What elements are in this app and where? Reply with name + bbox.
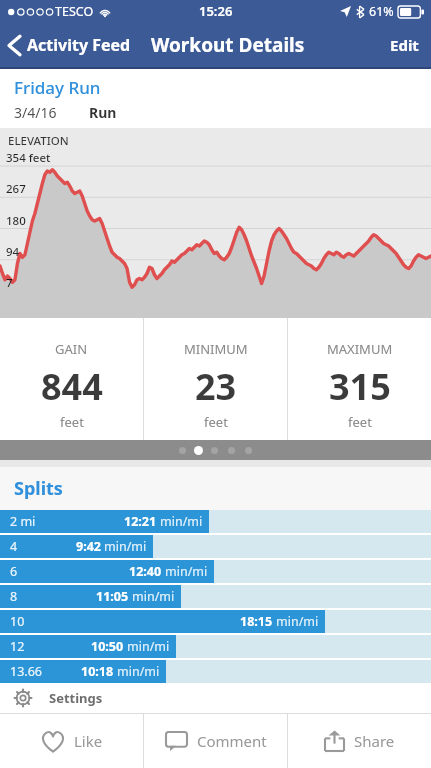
button[interactable]: Edit bbox=[378, 27, 431, 63]
button[interactable]: Friday Run bbox=[0, 69, 431, 128]
staticText: feet bbox=[60, 413, 84, 431]
staticText: ELEVATION bbox=[8, 133, 69, 149]
button[interactable]: 8 bbox=[0, 585, 431, 608]
staticText: min/mi bbox=[165, 563, 208, 580]
staticText: 12:40 bbox=[129, 563, 162, 580]
staticText: min/mi bbox=[276, 613, 319, 630]
staticText: Run bbox=[89, 103, 117, 122]
staticText: 8 bbox=[10, 588, 18, 605]
staticText: min/mi bbox=[160, 513, 203, 530]
staticText: 12 bbox=[10, 638, 25, 655]
staticText: 94 bbox=[6, 244, 20, 260]
staticText: Settings bbox=[49, 689, 103, 707]
staticText: 15:26 bbox=[199, 2, 233, 20]
button[interactable]: Back bbox=[0, 28, 137, 62]
button[interactable]: MAXIMUM bbox=[288, 318, 431, 440]
staticText: 7 bbox=[6, 275, 13, 291]
button[interactable]: 13.66 bbox=[0, 660, 431, 683]
button[interactable]: Share bbox=[288, 714, 431, 768]
staticText: 61% bbox=[369, 3, 394, 20]
staticText: 23 bbox=[195, 362, 237, 411]
staticText: 9:42 bbox=[76, 538, 101, 555]
button[interactable]: Like bbox=[0, 714, 143, 768]
staticText: MINIMUM bbox=[184, 340, 248, 358]
staticText: MAXIMUM bbox=[327, 340, 393, 358]
staticText: 11:05 bbox=[96, 588, 129, 605]
staticText: 10:50 bbox=[91, 638, 124, 655]
staticText: min/mi bbox=[104, 538, 147, 555]
staticText: GAIN bbox=[55, 340, 88, 358]
button[interactable]: Settings bbox=[0, 683, 431, 713]
staticText: 4 bbox=[10, 538, 18, 555]
button[interactable]: 2 mi bbox=[0, 510, 431, 533]
staticText: 10 bbox=[10, 613, 25, 630]
staticText: min/mi bbox=[117, 663, 160, 680]
button[interactable]: Comment bbox=[144, 714, 287, 768]
staticText: 315 bbox=[329, 362, 391, 411]
staticText: Like bbox=[74, 731, 103, 751]
staticText: Splits bbox=[14, 476, 63, 501]
staticText: 844 bbox=[41, 362, 103, 411]
staticText: 18:15 bbox=[240, 613, 273, 630]
staticText: min/mi bbox=[132, 588, 175, 605]
staticText: 6 bbox=[10, 563, 18, 580]
button[interactable]: GAIN bbox=[0, 318, 143, 440]
button[interactable]: 10 bbox=[0, 610, 431, 633]
button[interactable]: 4 bbox=[0, 535, 431, 558]
staticText: 180 bbox=[6, 213, 26, 229]
staticText: feet bbox=[204, 413, 228, 431]
button[interactable]: MINIMUM bbox=[144, 318, 287, 440]
staticText: 267 bbox=[6, 181, 26, 197]
staticText: 3/4/16 bbox=[14, 103, 57, 122]
staticText: Workout Details bbox=[151, 32, 305, 58]
staticText: Activity Feed bbox=[27, 34, 131, 56]
staticText: Friday Run bbox=[14, 76, 101, 99]
button[interactable]: 6 bbox=[0, 560, 431, 583]
staticText: Comment bbox=[197, 731, 267, 751]
staticText: feet bbox=[348, 413, 372, 431]
staticText: 2 mi bbox=[10, 513, 36, 530]
other: Back bbox=[8, 35, 21, 56]
button[interactable]: 12 bbox=[0, 635, 431, 658]
staticText: Share bbox=[354, 731, 395, 751]
staticText: 10:18 bbox=[81, 663, 114, 680]
staticText: TESCO bbox=[55, 3, 94, 20]
staticText: 12:21 bbox=[124, 513, 157, 530]
staticText: 354 feet bbox=[6, 150, 51, 166]
staticText: 13.66 bbox=[10, 663, 42, 680]
staticText: min/mi bbox=[127, 638, 170, 655]
